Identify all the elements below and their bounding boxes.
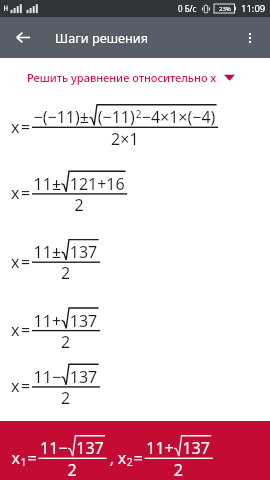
button[interactable]: More options	[229, 17, 270, 58]
staticText: 0 Б/с	[178, 3, 197, 14]
staticText: 11:09	[241, 2, 266, 15]
button[interactable]: Решить уравнение относительно x	[14, 67, 248, 88]
staticText: 23%	[219, 5, 231, 13]
staticText: Решить уравнение относительно x	[27, 70, 217, 85]
button[interactable]: Back	[8, 17, 37, 58]
staticText: Шаги решения	[55, 29, 148, 46]
